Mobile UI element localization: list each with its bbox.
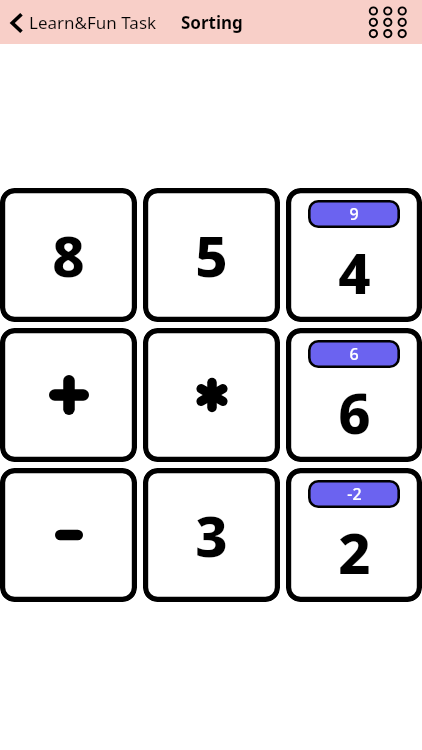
button[interactable]: 2 <box>286 468 422 602</box>
staticText: 8 <box>52 217 85 293</box>
staticText: 6 <box>349 343 359 365</box>
button[interactable]: Learn&Fun Task <box>8 7 159 38</box>
button[interactable]: 6 <box>286 328 422 462</box>
staticText: -2 <box>347 483 362 505</box>
button[interactable]: Menu <box>364 2 412 42</box>
button[interactable]: 4 <box>286 188 422 322</box>
button[interactable]: 8 <box>0 188 137 322</box>
button[interactable]: 5 <box>143 188 280 322</box>
button[interactable] <box>0 328 137 462</box>
staticText: 6 <box>338 374 371 450</box>
staticText: 9 <box>349 203 359 225</box>
staticText: Sorting <box>181 11 243 34</box>
staticText: Learn&Fun Task <box>29 11 157 34</box>
button[interactable] <box>143 328 280 462</box>
button[interactable] <box>0 468 137 602</box>
staticText: 5 <box>195 217 228 293</box>
button[interactable]: 3 <box>143 468 280 602</box>
staticText: 2 <box>338 514 371 590</box>
staticText: 3 <box>195 497 228 573</box>
staticText: 4 <box>338 234 371 310</box>
